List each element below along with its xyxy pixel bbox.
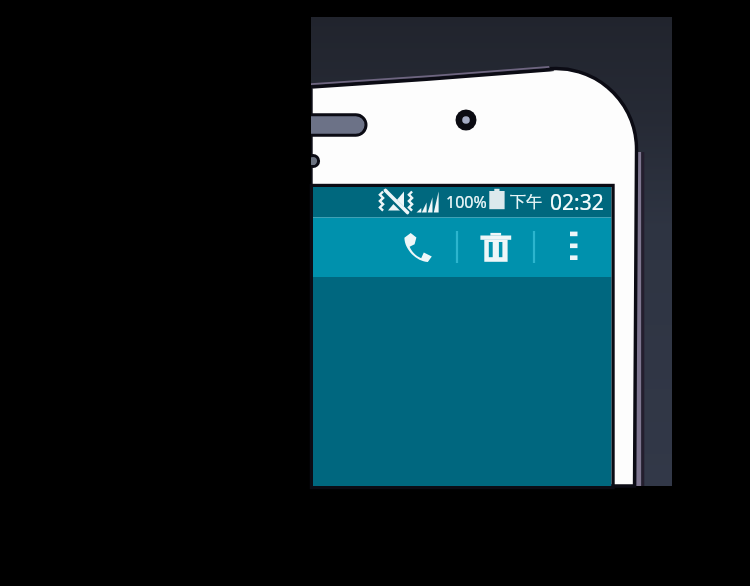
button[interactable]: More options	[536, 218, 612, 277]
button[interactable]: Delete	[459, 218, 533, 277]
button[interactable]: Call	[385, 218, 457, 277]
